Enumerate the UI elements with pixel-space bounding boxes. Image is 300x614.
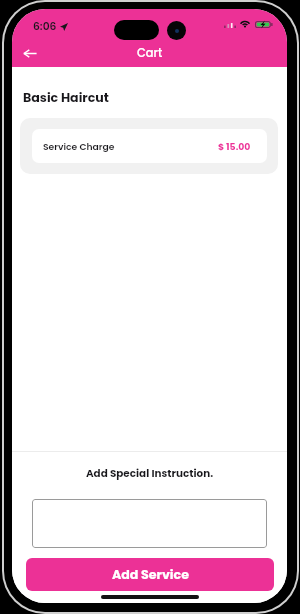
staticText: $ 15.00	[218, 140, 251, 153]
staticText: Service Charge	[43, 140, 115, 153]
staticText: Cart	[137, 45, 163, 61]
staticText: Basic Haircut	[23, 89, 109, 107]
staticText: 6:06	[33, 19, 57, 34]
staticText: Add Service	[112, 566, 189, 584]
button[interactable]: Service Charge	[32, 129, 267, 163]
button[interactable]: Add Service	[26, 558, 274, 591]
staticText: Add Special Instruction.	[12, 466, 287, 481]
button[interactable]: Back	[16, 39, 44, 67]
button[interactable]	[32, 499, 267, 548]
